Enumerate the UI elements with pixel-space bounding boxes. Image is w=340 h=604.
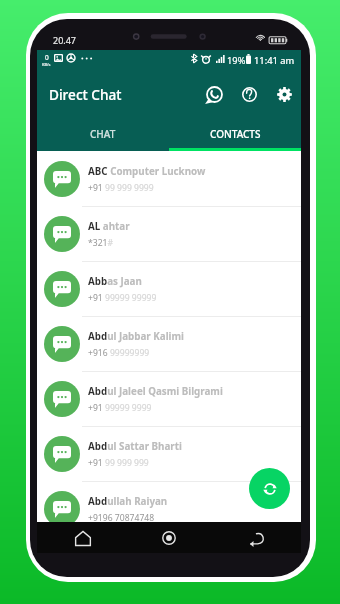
staticText: Abdul Jabbar Kalimi <box>88 330 184 343</box>
button[interactable]: Settings <box>270 80 298 108</box>
staticText: 19% <box>227 54 246 67</box>
button[interactable]: Help <box>235 80 263 108</box>
button[interactable]: CONTACTS <box>169 120 301 148</box>
staticText: 11:41 am <box>254 54 295 67</box>
button[interactable]: Home <box>68 523 98 553</box>
staticText: KB/s <box>42 62 51 67</box>
staticText: +9196 70874748 <box>88 512 155 524</box>
button[interactable]: CHAT <box>37 120 169 148</box>
staticText: CHAT <box>90 127 116 141</box>
staticText: +91 99 999 999 <box>88 457 149 469</box>
staticText: Abdul Jaleel Qasmi Bilgrami <box>88 385 223 398</box>
staticText: CONTACTS <box>210 127 261 141</box>
button[interactable]: Abdul Sattar Bharti <box>37 426 301 481</box>
staticText: Direct Chat <box>49 85 122 104</box>
staticText: Abbas Jaan <box>88 275 142 288</box>
staticText: +916 99999999 <box>88 347 150 359</box>
button[interactable]: Abbas Jaan <box>37 261 301 316</box>
button[interactable]: WhatsApp <box>200 80 228 108</box>
button[interactable]: AL ahtar <box>37 206 301 261</box>
staticText: ABC Computer Lucknow <box>88 165 206 178</box>
button[interactable]: Abdullah Raiyan <box>37 481 301 536</box>
staticText: +91 99 999 9999 <box>88 182 154 194</box>
staticText: 20.47 <box>53 34 77 46</box>
staticText: Abdul Sattar Bharti <box>88 440 182 453</box>
button[interactable]: ABC Computer Lucknow <box>37 151 301 206</box>
staticText: 0 <box>45 53 49 62</box>
button[interactable]: Sync contacts <box>249 468 290 509</box>
button[interactable]: Back <box>241 523 271 553</box>
staticText: +91 99999 9999 <box>88 402 152 414</box>
staticText: AL ahtar <box>88 220 130 233</box>
button[interactable]: Abdul Jabbar Kalimi <box>37 316 301 371</box>
button[interactable]: Abdul Jaleel Qasmi Bilgrami <box>37 371 301 426</box>
staticText: *321# <box>88 237 114 249</box>
button[interactable]: Recents <box>154 523 184 553</box>
staticText: Abdullah Raiyan <box>88 495 168 508</box>
staticText: +91 99999 99999 <box>88 292 157 304</box>
